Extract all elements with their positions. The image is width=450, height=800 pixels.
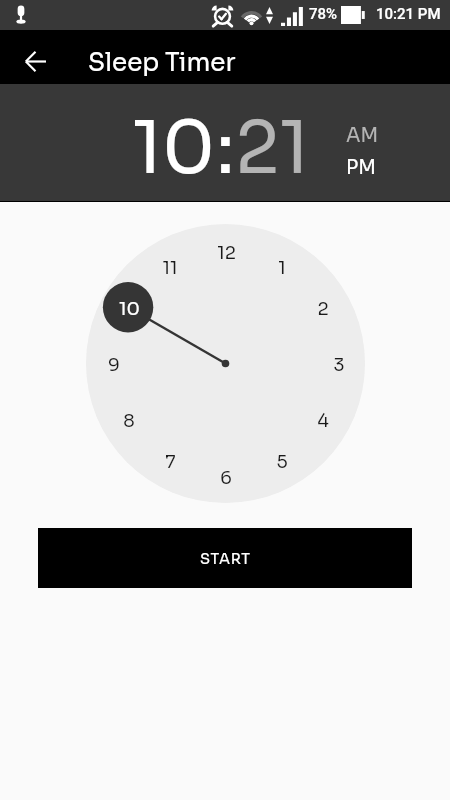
staticText: 3 bbox=[333, 354, 345, 377]
button[interactable]: 10 bbox=[107, 287, 151, 331]
staticText: 11 bbox=[162, 257, 178, 280]
button[interactable]: 1 bbox=[260, 246, 304, 290]
button[interactable]: Back bbox=[11, 37, 59, 85]
button[interactable]: PM bbox=[346, 155, 376, 179]
staticText: 10:21 PM bbox=[376, 5, 441, 23]
staticText: 6 bbox=[220, 467, 232, 490]
staticText: 2 bbox=[317, 298, 329, 321]
button[interactable]: 8 bbox=[107, 399, 151, 443]
staticText: 10 bbox=[119, 298, 140, 321]
button[interactable]: START bbox=[38, 528, 412, 588]
button[interactable]: 7 bbox=[148, 440, 192, 484]
button[interactable]: 3 bbox=[317, 343, 361, 387]
staticText: 5 bbox=[276, 451, 288, 474]
button[interactable]: 11 bbox=[148, 246, 192, 290]
staticText: 9 bbox=[108, 354, 120, 377]
button[interactable]: AM bbox=[346, 123, 379, 147]
button[interactable]: 21 bbox=[235, 104, 310, 194]
staticText: 12 bbox=[217, 242, 236, 265]
button[interactable]: 9 bbox=[92, 343, 136, 387]
button[interactable]: 2 bbox=[301, 287, 345, 331]
staticText: 78% bbox=[309, 5, 338, 23]
button[interactable]: 6 bbox=[204, 456, 248, 500]
staticText: 7 bbox=[165, 451, 176, 474]
button[interactable]: 4 bbox=[301, 399, 345, 443]
staticText: Sleep Timer bbox=[88, 47, 236, 78]
button[interactable]: 5 bbox=[260, 440, 304, 484]
staticText: 8 bbox=[123, 410, 135, 433]
staticText: 1 bbox=[278, 257, 286, 280]
button[interactable]: 10 bbox=[132, 104, 216, 194]
staticText: START bbox=[200, 550, 251, 568]
staticText: 4 bbox=[317, 410, 329, 433]
button[interactable]: 12 bbox=[204, 231, 248, 275]
staticText: : bbox=[216, 104, 235, 194]
